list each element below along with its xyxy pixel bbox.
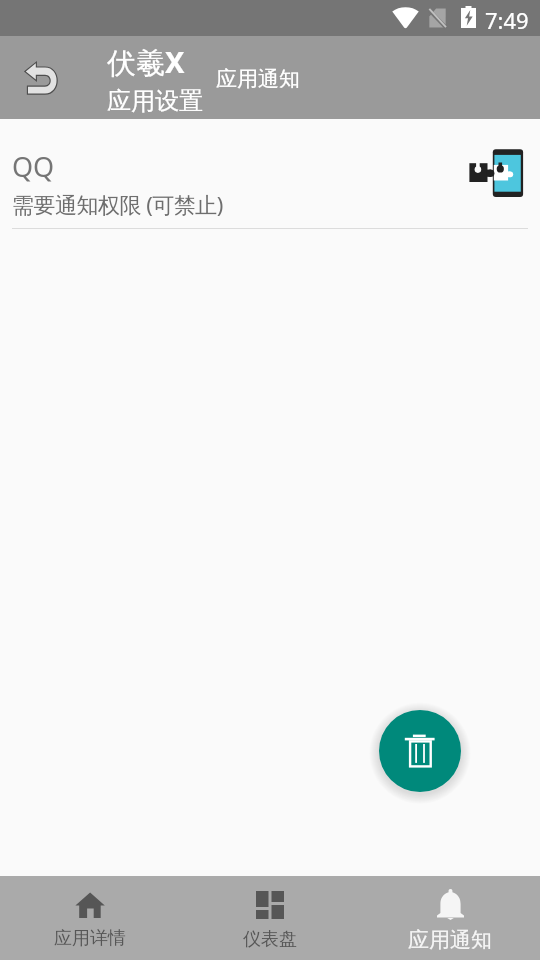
staticText: 需要通知权限 (可禁止) — [12, 189, 223, 219]
staticText: QQ — [12, 148, 55, 185]
button[interactable]: 仪表盘 — [180, 876, 360, 960]
staticText: 应用通知 — [216, 66, 300, 92]
button[interactable]: 应用通知 — [360, 876, 540, 960]
staticText: 伏羲X — [107, 42, 185, 82]
staticText: 应用通知 — [408, 927, 492, 953]
staticText: 7:49 — [485, 5, 529, 35]
button[interactable]: Delete — [379, 710, 461, 792]
button[interactable]: QQ — [0, 119, 540, 229]
button[interactable]: Back — [8, 43, 78, 113]
staticText: 应用设置 — [107, 86, 203, 116]
button[interactable]: 应用详情 — [0, 876, 180, 960]
staticText: 仪表盘 — [243, 928, 297, 951]
staticText: 应用详情 — [54, 927, 126, 950]
